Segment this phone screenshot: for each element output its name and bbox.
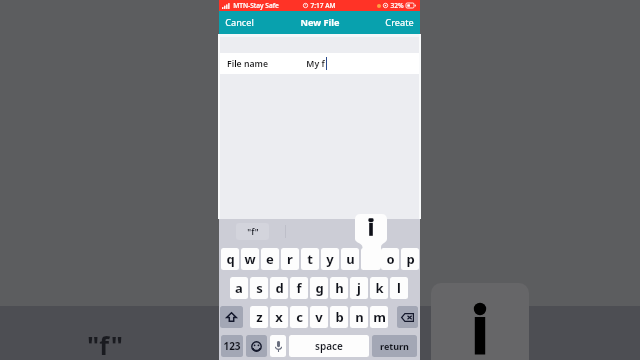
button[interactable]: r (281, 248, 299, 270)
staticText: 32% (390, 1, 404, 10)
staticText: c (296, 308, 303, 326)
button[interactable]: Cancel (219, 13, 260, 32)
button[interactable]: u (341, 248, 359, 270)
button[interactable]: "f" (219, 219, 285, 244)
button[interactable]: g (310, 277, 328, 299)
button[interactable]: i (355, 214, 387, 270)
staticText: x (275, 308, 283, 326)
button[interactable]: Dictate (270, 335, 286, 357)
staticText: m (373, 308, 386, 326)
button[interactable]: j (350, 277, 368, 299)
staticText: 123 (223, 339, 241, 353)
button[interactable]: d (270, 277, 288, 299)
button[interactable]: z (250, 306, 268, 328)
button[interactable]: q (221, 248, 239, 270)
staticText: Cancel (225, 16, 254, 29)
button[interactable]: File name (219, 53, 420, 74)
button[interactable]: Shift (220, 306, 243, 328)
button[interactable]: p (401, 248, 419, 270)
staticText: My f (306, 58, 325, 70)
staticText: y (326, 250, 334, 268)
staticText: d (275, 279, 284, 297)
staticText: j (357, 279, 361, 297)
button[interactable]: c (290, 306, 308, 328)
button[interactable]: 123 (221, 335, 243, 357)
staticText: h (335, 279, 344, 297)
staticText: "f" (87, 328, 123, 360)
button[interactable]: f (290, 277, 308, 299)
button[interactable]: a (230, 277, 248, 299)
staticText: return (380, 340, 409, 352)
button[interactable]: x (270, 306, 288, 328)
button[interactable]: l (390, 277, 408, 299)
button[interactable]: o (381, 248, 399, 270)
staticText: Create (385, 16, 414, 29)
button[interactable]: v (310, 306, 328, 328)
staticText: p (406, 250, 415, 268)
staticText: t (307, 250, 313, 268)
button[interactable]: Key preview i (431, 283, 529, 360)
button[interactable]: m (370, 306, 388, 328)
staticText: space (315, 339, 343, 353)
button[interactable]: e (261, 248, 279, 270)
button[interactable]: t (301, 248, 319, 270)
button[interactable]: w (241, 248, 259, 270)
button[interactable]: s (250, 277, 268, 299)
staticText: w (244, 250, 256, 268)
button[interactable]: return (372, 335, 417, 357)
staticText: o (386, 250, 395, 268)
staticText: File name (227, 58, 268, 70)
staticText: b (335, 308, 344, 326)
staticText: k (375, 279, 384, 297)
button[interactable]: space (289, 335, 369, 357)
button[interactable]: Create (379, 13, 420, 32)
staticText: e (266, 250, 274, 268)
staticText: f (296, 279, 302, 297)
staticText: r (287, 250, 293, 268)
staticText: u (346, 250, 355, 268)
staticText: 7:17 AM (310, 1, 336, 10)
staticText: MTN-Stay Safe (233, 1, 279, 10)
button[interactable]: k (370, 277, 388, 299)
button[interactable]: Emoji (246, 335, 267, 357)
staticText: g (315, 279, 324, 297)
staticText: "f" (247, 226, 259, 238)
staticText: q (226, 250, 235, 268)
staticText: l (397, 279, 401, 297)
staticText: v (315, 308, 323, 326)
staticText: n (355, 308, 364, 326)
button[interactable]: b (330, 306, 348, 328)
staticText: s (256, 279, 263, 297)
button[interactable]: h (330, 277, 348, 299)
staticText: a (235, 279, 243, 297)
staticText: z (256, 308, 263, 326)
button[interactable]: Backspace (397, 306, 418, 328)
button[interactable]: n (350, 306, 368, 328)
button[interactable]: y (321, 248, 339, 270)
staticText: New File (300, 16, 340, 29)
